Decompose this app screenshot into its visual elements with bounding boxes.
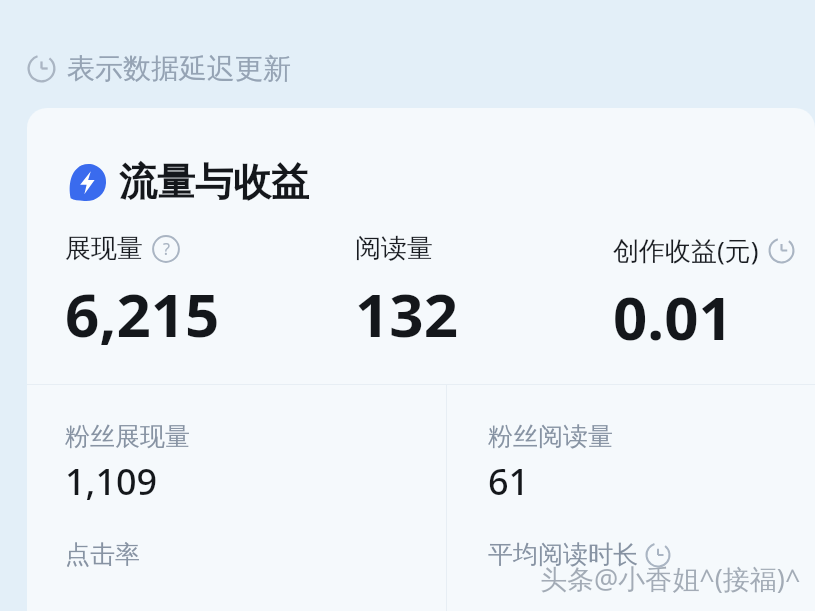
staticText: 粉丝展现量 <box>65 421 190 452</box>
staticText: 表示数据延迟更新 <box>67 51 291 86</box>
staticText: 创作收益(元) <box>613 232 759 268</box>
button[interactable]: 流量与收益 <box>68 158 309 206</box>
button[interactable]: 点击率 <box>65 539 140 570</box>
staticText: 展现量 <box>65 232 143 265</box>
button[interactable]: 展现量说明 <box>152 235 180 263</box>
staticText: 0.01 <box>613 276 733 358</box>
staticText: 头条@小香姐^(接福)^ <box>540 560 801 597</box>
staticText: 平均阅读时长 <box>488 539 638 570</box>
other: 数据延迟更新 <box>27 54 56 83</box>
other: 阅读时长延迟更新 <box>645 542 671 568</box>
button[interactable]: 平均阅读时长 <box>488 539 671 570</box>
staticText: 132 <box>355 273 458 355</box>
staticText: 61 <box>488 457 530 506</box>
staticText: 点击率 <box>65 539 140 570</box>
staticText: ? <box>163 238 170 260</box>
staticText: 粉丝阅读量 <box>488 421 613 452</box>
staticText: 阅读量 <box>355 232 433 265</box>
button[interactable]: 数据延迟更新 <box>27 51 291 86</box>
staticText: 流量与收益 <box>119 158 309 206</box>
other: 收益延迟更新 <box>768 237 795 264</box>
staticText: 6,215 <box>65 273 220 355</box>
button[interactable]: 粉丝阅读量 <box>488 421 613 506</box>
button[interactable]: 粉丝展现量 <box>65 421 190 506</box>
staticText: 1,109 <box>65 457 158 506</box>
